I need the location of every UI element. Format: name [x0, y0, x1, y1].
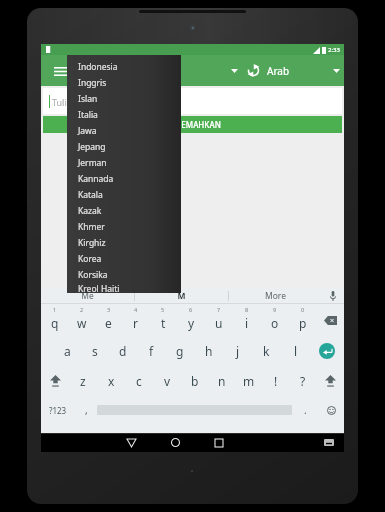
button[interactable]: TERJEMAHKAN [43, 116, 342, 133]
staticText: Korsika [78, 269, 108, 281]
staticText: Jerman [78, 157, 107, 169]
button[interactable]: Keyboard [316, 433, 342, 452]
staticText: u [215, 315, 223, 331]
button[interactable]: Indonesia [67, 59, 181, 75]
button[interactable]: Islan [67, 91, 181, 107]
staticText: n [218, 373, 226, 389]
button[interactable]: Shift [316, 366, 344, 396]
staticText: b [191, 373, 199, 389]
button[interactable]: 0 [289, 304, 317, 336]
staticText: e [105, 315, 112, 331]
staticText: f [149, 343, 154, 359]
button[interactable]: Emoji [318, 396, 344, 424]
staticText: g [176, 343, 184, 359]
button[interactable]: Kazak [67, 203, 181, 219]
button[interactable]: m [235, 366, 262, 396]
staticText: w [77, 315, 87, 331]
button[interactable]: Enter [310, 336, 344, 366]
button[interactable]: 1 [41, 304, 68, 336]
staticText: x [108, 373, 115, 389]
button[interactable]: s [81, 336, 109, 366]
button[interactable]: M [135, 288, 228, 303]
button[interactable]: Kannada [67, 171, 181, 187]
staticText: Khmer [78, 221, 105, 233]
staticText: c [136, 373, 142, 389]
button[interactable]: f [137, 336, 165, 366]
staticText: v [164, 373, 171, 389]
button[interactable]: n [208, 366, 235, 396]
button[interactable]: Kirghiz [67, 235, 181, 251]
button[interactable]: Me [41, 288, 134, 303]
staticText: Me [81, 290, 94, 302]
staticText: Inggris [78, 77, 107, 89]
button[interactable]: Swap languages [241, 55, 265, 86]
button[interactable]: ? [289, 366, 316, 396]
button[interactable]: Voice input [322, 288, 344, 303]
button[interactable]: x [97, 366, 125, 396]
button[interactable]: ! [262, 366, 289, 396]
staticText: 6 [189, 306, 193, 313]
button[interactable]: g [165, 336, 194, 366]
button[interactable]: . [292, 396, 318, 424]
button[interactable]: More [229, 288, 322, 303]
button[interactable]: Recents [197, 433, 241, 452]
staticText: l [294, 343, 298, 359]
staticText: Kreol Haiti [78, 283, 120, 293]
button[interactable]: Arab [267, 55, 344, 86]
staticText: Korea [78, 253, 102, 265]
staticText: a [64, 343, 71, 359]
staticText: 7 [217, 306, 221, 313]
staticText: p [299, 315, 307, 331]
button[interactable]: Shift [41, 366, 69, 396]
button[interactable]: 3 [95, 304, 122, 336]
button[interactable]: 2 [68, 304, 95, 336]
staticText: Jepang [78, 141, 106, 153]
button[interactable]: Jerman [67, 155, 181, 171]
button[interactable]: h [194, 336, 223, 366]
button[interactable]: 8 [233, 304, 261, 336]
button[interactable]: Menu [49, 60, 71, 82]
button[interactable]: Back [109, 433, 153, 452]
button[interactable]: z [69, 366, 97, 396]
button[interactable]: Korsika [67, 267, 181, 283]
button[interactable]: Source language [227, 55, 241, 86]
staticText: m [243, 373, 255, 389]
button[interactable]: , [75, 396, 97, 424]
button[interactable]: Jepang [67, 139, 181, 155]
button[interactable]: Italia [67, 107, 181, 123]
button[interactable]: l [281, 336, 310, 366]
button[interactable]: 5 [149, 304, 177, 336]
button[interactable]: Backspace [317, 304, 344, 336]
staticText: 9 [273, 306, 277, 313]
staticText: 3 [107, 306, 111, 313]
button[interactable]: 6 [177, 304, 205, 336]
button[interactable]: Katala [67, 187, 181, 203]
staticText: 1 [53, 306, 57, 313]
staticText: j [236, 343, 240, 359]
button[interactable]: Tulis kata atau kalimat [43, 88, 342, 114]
button[interactable]: Jawa [67, 123, 181, 139]
button[interactable]: Korea [67, 251, 181, 267]
button[interactable]: Home [153, 433, 197, 452]
button[interactable]: b [181, 366, 208, 396]
button[interactable]: v [153, 366, 181, 396]
button[interactable]: Inggris [67, 75, 181, 91]
button[interactable]: Kreol Haiti [67, 283, 181, 293]
button[interactable]: Khmer [67, 219, 181, 235]
button[interactable]: c [125, 366, 153, 396]
staticText: s [92, 343, 98, 359]
staticText: More [265, 290, 286, 302]
button[interactable]: k [252, 336, 281, 366]
button[interactable]: ?123 [41, 396, 75, 424]
staticText: t [161, 315, 166, 331]
staticText: 4 [134, 306, 138, 313]
button[interactable]: 4 [122, 304, 149, 336]
button[interactable]: d [109, 336, 137, 366]
button[interactable]: a [53, 336, 81, 366]
staticText: 0 [301, 306, 305, 313]
button[interactable]: 7 [205, 304, 233, 336]
staticText: h [205, 343, 213, 359]
button[interactable]: 9 [261, 304, 289, 336]
button[interactable]: j [223, 336, 252, 366]
